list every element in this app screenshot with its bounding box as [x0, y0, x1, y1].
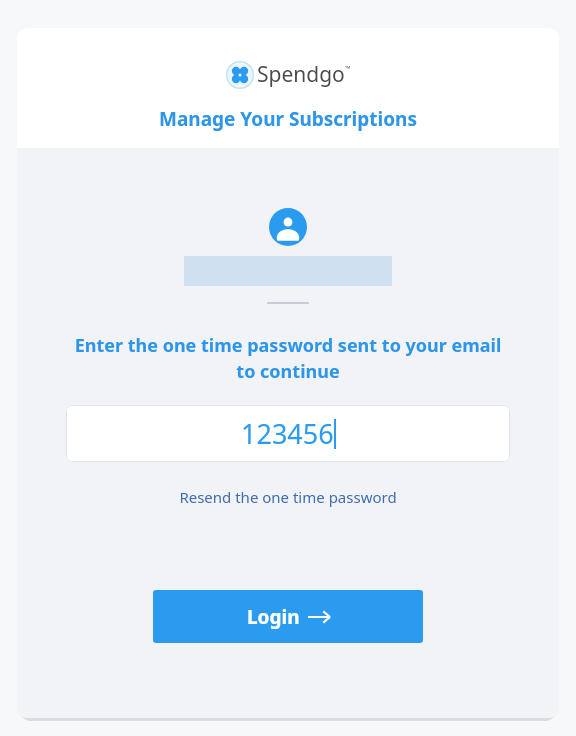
staticText: Manage Your Subscriptions	[159, 106, 417, 132]
staticText: Login	[247, 604, 300, 630]
button[interactable]: Login	[153, 590, 423, 643]
staticText: Resend the one time password	[179, 487, 397, 507]
staticText: Enter the one time password sent to your…	[67, 333, 509, 383]
other: Account	[269, 208, 307, 246]
staticText: 123456	[241, 415, 334, 452]
staticText: ™	[345, 64, 351, 74]
staticText: Spendgo	[257, 60, 345, 89]
button[interactable]: Resend the one time password	[171, 483, 405, 511]
button[interactable]: 123456	[66, 405, 510, 462]
